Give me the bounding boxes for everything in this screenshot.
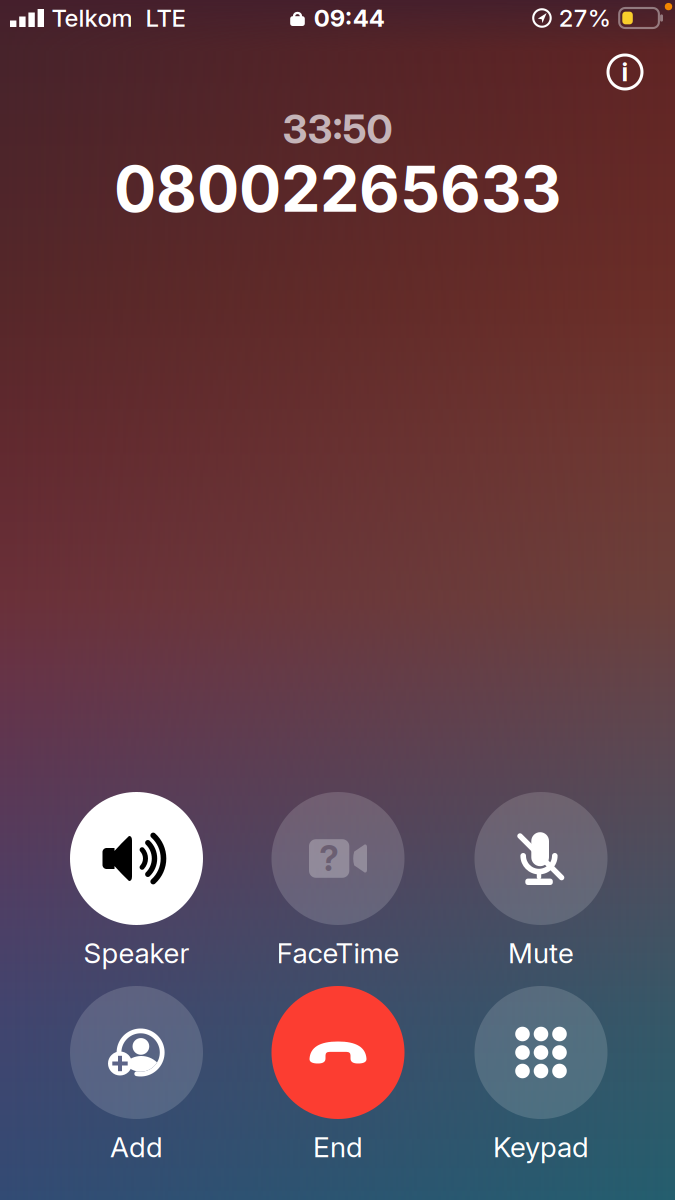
- staticText: FaceTime: [276, 936, 399, 970]
- staticText: ?: [319, 837, 339, 879]
- staticText: Mute: [508, 936, 574, 970]
- staticText: 09:44: [314, 3, 385, 32]
- staticText: Speaker: [83, 936, 189, 970]
- button[interactable]: Call details: [599, 46, 651, 98]
- button[interactable]: ?: [238, 790, 438, 968]
- staticText: 33:50: [282, 105, 392, 153]
- button[interactable]: Add: [36, 984, 236, 1162]
- staticText: LTE: [145, 3, 185, 32]
- staticText: i: [621, 57, 628, 87]
- staticText: Add: [110, 1130, 163, 1164]
- staticText: End: [313, 1130, 363, 1164]
- staticText: 27%: [559, 3, 611, 32]
- staticText: 08002265633: [114, 151, 561, 227]
- button[interactable]: End: [238, 984, 438, 1162]
- button[interactable]: Speaker: [36, 790, 236, 968]
- button[interactable]: Keypad: [441, 984, 641, 1162]
- button[interactable]: Mute: [441, 790, 641, 968]
- staticText: Telkom: [51, 3, 132, 32]
- staticText: Keypad: [493, 1130, 589, 1164]
